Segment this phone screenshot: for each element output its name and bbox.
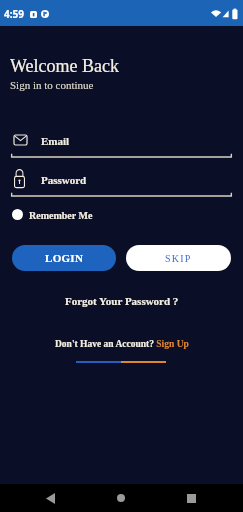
button[interactable] [101,484,141,512]
staticText: LOGIN [45,252,84,264]
button[interactable]: Forgot Your Password ? [65,295,179,307]
button[interactable]: Email [0,130,243,159]
button[interactable]: Remember Me [10,206,100,223]
staticText: Remember Me [29,210,93,221]
button[interactable]: LOGIN [12,245,116,271]
button[interactable]: SKIP [126,245,231,271]
staticText: 4:59 [4,7,24,21]
staticText: Email [41,135,70,147]
button[interactable] [30,484,70,512]
button[interactable]: Password [0,168,243,198]
button[interactable] [171,484,211,512]
button[interactable]: Don't Have an Account? Sign Up [55,339,189,350]
staticText: SKIP [165,253,192,264]
staticText: Password [41,174,87,186]
staticText: Sign in to continue [10,79,94,91]
staticText: Welcome Back [10,56,120,76]
